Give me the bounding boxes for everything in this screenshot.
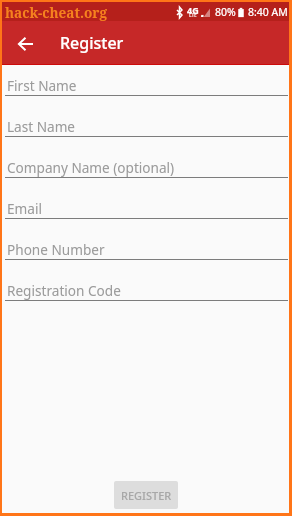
button[interactable]: Back (5, 24, 45, 64)
staticText: Email (7, 199, 42, 218)
staticText: LTE (189, 12, 197, 18)
button[interactable]: Email (2, 188, 289, 229)
staticText: 8:40 AM (248, 5, 288, 19)
staticText: 80% (215, 5, 236, 19)
staticText: Phone Number (7, 240, 105, 259)
button[interactable]: Company Name (optional) (2, 147, 289, 188)
button[interactable]: First Name (2, 65, 289, 106)
staticText: Last Name (7, 117, 76, 136)
staticText: First Name (7, 76, 77, 95)
button[interactable]: Phone Number (2, 229, 289, 270)
button[interactable]: Last Name (2, 106, 289, 147)
button[interactable]: Registration Code (2, 270, 289, 311)
staticText: Registration Code (7, 281, 121, 300)
button[interactable]: REGISTER (114, 481, 178, 509)
staticText: hack-cheat.org (5, 3, 107, 22)
staticText: 4G (187, 4, 199, 16)
staticText: REGISTER (121, 488, 172, 503)
staticText: Register (60, 32, 124, 54)
staticText: Company Name (optional) (7, 158, 175, 177)
